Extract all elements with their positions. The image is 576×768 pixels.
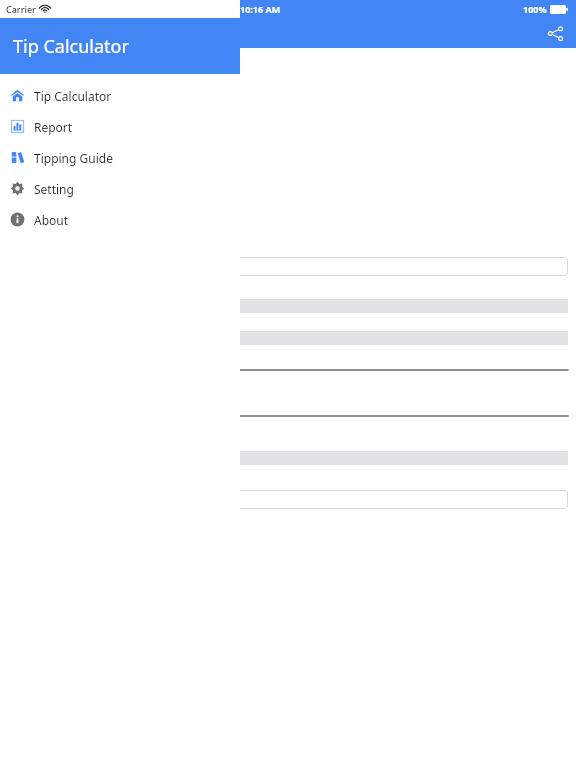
staticText: Tip Calculator <box>7 24 96 42</box>
button[interactable]: Tip Calculator <box>0 80 240 111</box>
button[interactable]: Tipping Guide <box>0 142 240 173</box>
button[interactable] <box>8 490 568 509</box>
button[interactable]: Report <box>0 111 240 142</box>
button[interactable]: About <box>0 204 240 235</box>
button[interactable] <box>74 360 568 380</box>
staticText: Setting <box>34 181 74 197</box>
staticText: Tip Calculator <box>34 88 112 104</box>
button[interactable] <box>74 257 568 276</box>
staticText: 100% <box>523 3 547 15</box>
staticText: Tipping Guide <box>34 150 113 166</box>
button[interactable]: Share <box>540 18 570 48</box>
button[interactable]: Setting <box>0 173 240 204</box>
button[interactable] <box>74 406 568 426</box>
staticText: Report <box>34 119 73 135</box>
staticText: 10:16 AM <box>240 3 281 15</box>
staticText: About <box>34 212 69 228</box>
staticText: Tip Calculator <box>13 34 129 59</box>
staticText: Carrier <box>6 3 36 15</box>
